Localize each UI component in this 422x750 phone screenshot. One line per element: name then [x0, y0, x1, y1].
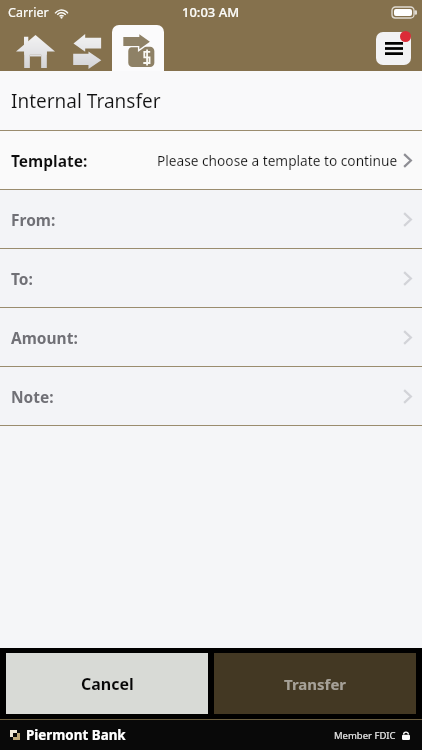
staticText: Internal Transfer	[11, 88, 161, 114]
button[interactable]: Transfers	[72, 24, 112, 71]
button[interactable]: Template:	[0, 131, 422, 189]
staticText: Member FDIC	[334, 729, 396, 742]
button[interactable]: From:	[0, 190, 422, 248]
staticText: From:	[11, 209, 56, 230]
button[interactable]: To:	[0, 249, 422, 307]
staticText: Please choose a template to continue	[157, 151, 398, 170]
staticText: Carrier	[8, 4, 49, 21]
staticText: To:	[11, 268, 33, 289]
button[interactable]: Note:	[0, 367, 422, 425]
staticText: Cancel	[81, 673, 134, 695]
staticText: Piermont Bank	[26, 726, 126, 744]
staticText: Note:	[11, 386, 54, 407]
button[interactable]: Menu	[366, 24, 422, 71]
button[interactable]: Amount:	[0, 308, 422, 366]
button[interactable]: Internal Transfer tab	[112, 25, 164, 71]
button[interactable]: Home	[0, 24, 72, 71]
button[interactable]: Transfer	[214, 653, 416, 714]
staticText: Transfer	[284, 674, 347, 694]
staticText: Amount:	[11, 327, 78, 348]
staticText: 10:03 AM	[182, 3, 240, 21]
staticText: Template:	[11, 150, 88, 171]
button[interactable]: Cancel	[6, 653, 208, 714]
